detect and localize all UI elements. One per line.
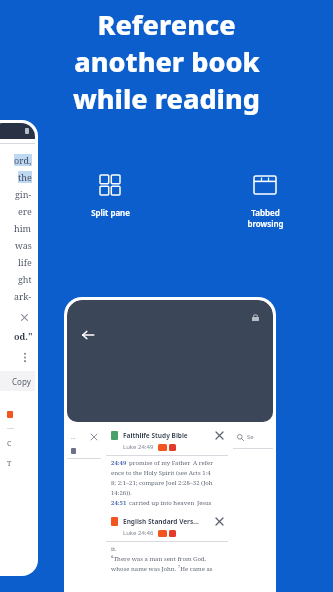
staticText: ord, xyxy=(14,154,32,166)
button[interactable]: Search xyxy=(233,426,273,592)
staticText: gin- xyxy=(15,188,32,200)
button[interactable]: Copy xyxy=(0,371,35,391)
staticText: another book xyxy=(74,43,260,80)
staticText: C xyxy=(7,439,12,449)
staticText: ght xyxy=(18,273,32,285)
staticText: ark- xyxy=(14,290,32,302)
staticText: Luke 24:46 xyxy=(123,529,154,537)
staticText: Jesus xyxy=(197,499,212,507)
staticText: ⁶There was a man sent from God, xyxy=(111,555,207,563)
staticText: 24:49 xyxy=(111,459,127,467)
staticText: Tabbed xyxy=(251,207,280,218)
staticText: … xyxy=(71,433,76,441)
staticText: while reading xyxy=(73,80,260,117)
button[interactable]: Close panel xyxy=(216,432,223,439)
staticText: Reference xyxy=(97,6,236,43)
other: Close xyxy=(91,434,97,440)
staticText: Se xyxy=(247,433,254,441)
staticText: 8; 2:1–21; compare Joel 2:28–32 (Joh xyxy=(111,479,213,487)
other: Tabbed browsing xyxy=(254,174,276,196)
staticText: od." xyxy=(14,330,33,342)
button[interactable]: Tabbed browsing xyxy=(231,172,299,229)
staticText: browsing xyxy=(247,218,284,229)
staticText: promise of my Father xyxy=(129,459,191,467)
staticText: T xyxy=(7,459,12,469)
button[interactable]: English Standard Vers… xyxy=(106,512,228,592)
staticText: 14:26)). xyxy=(111,489,132,497)
button[interactable]: Close xyxy=(20,313,29,322)
staticText: whose name was John. ⁷He came as xyxy=(111,565,213,573)
staticText: Split pane xyxy=(91,207,130,218)
other: Split pane xyxy=(100,175,120,195)
staticText: it. xyxy=(111,545,117,553)
staticText: Luke 24:49 xyxy=(123,443,154,451)
button[interactable]: Split pane xyxy=(76,172,144,218)
button[interactable]: Faithlife Study Bible xyxy=(106,426,228,507)
staticText: Faithlife Study Bible xyxy=(123,431,188,440)
staticText: carried up into heaven xyxy=(129,499,195,507)
staticText: A refer xyxy=(193,459,214,467)
staticText: Copy xyxy=(12,376,31,387)
button[interactable]: … xyxy=(67,426,101,592)
staticText: English Standard Vers… xyxy=(123,517,199,526)
other: Search xyxy=(237,434,244,441)
button[interactable]: Back xyxy=(81,328,95,342)
staticText: him xyxy=(14,222,32,234)
staticText: ence to the Holy Spirit (see Acts 1:4 xyxy=(111,469,211,477)
button[interactable]: Close panel xyxy=(216,518,223,525)
button[interactable]: More options xyxy=(23,352,27,363)
staticText: was xyxy=(15,239,32,251)
staticText: ere xyxy=(18,205,32,217)
staticText: the xyxy=(18,171,32,183)
other: Locked xyxy=(252,314,259,321)
staticText: 24:51 xyxy=(111,499,127,507)
staticText: life xyxy=(18,256,32,268)
